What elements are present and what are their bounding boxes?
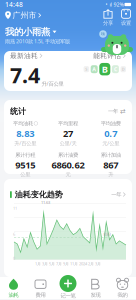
staticText: 设置 bbox=[121, 20, 131, 26]
staticText: 能耗评估 bbox=[93, 52, 121, 60]
staticText: • ıl 92% bbox=[105, 1, 123, 8]
staticText: 公里/天 bbox=[59, 140, 76, 147]
staticText: 我的 bbox=[117, 292, 127, 298]
staticText: 油耗变化趋势 bbox=[15, 190, 63, 199]
button[interactable]: 广州市 bbox=[5, 9, 41, 20]
button[interactable]: 分享 bbox=[103, 9, 113, 26]
staticText: 升 bbox=[108, 171, 113, 178]
button[interactable]: 我的 bbox=[109, 275, 136, 300]
button[interactable]: 一年 bbox=[111, 191, 126, 198]
staticText: 11 bbox=[13, 205, 17, 211]
staticText: 27 bbox=[63, 127, 73, 140]
button[interactable]: 记一笔 bbox=[59, 275, 76, 299]
staticText: A bbox=[92, 66, 96, 73]
staticText: 11.63 bbox=[41, 200, 50, 205]
button[interactable]: 我的小雨燕 bbox=[0, 26, 61, 38]
staticText: 分享 bbox=[103, 20, 113, 26]
staticText: 记一笔 bbox=[60, 292, 75, 299]
staticText: 1月 3月 5月 7月 9月 11月 2024 2月 3月 bbox=[35, 261, 101, 266]
staticText: 一年 bbox=[111, 191, 121, 198]
button[interactable]: 费用 bbox=[27, 275, 54, 300]
button[interactable]: 最新油耗 bbox=[10, 52, 43, 60]
staticText: 平均油费 bbox=[101, 120, 121, 127]
staticText: 8.83 bbox=[104, 231, 111, 237]
staticText: 0 bbox=[13, 255, 15, 261]
button[interactable]: 油耗 bbox=[0, 275, 27, 300]
staticText: 6860.62 bbox=[51, 159, 84, 171]
staticText: 雨燕 2010款 1.5L 手动冠军版 bbox=[5, 38, 70, 45]
staticText: 油耗 bbox=[8, 292, 18, 298]
button[interactable]: 能耗评估 bbox=[93, 52, 126, 60]
staticText: 元 bbox=[65, 171, 70, 178]
staticText: 9515 bbox=[15, 159, 35, 171]
staticText: 公里 bbox=[20, 171, 30, 178]
staticText: 7.4 bbox=[10, 61, 40, 89]
staticText: 平均里程 bbox=[58, 120, 78, 127]
staticText: B bbox=[102, 63, 108, 75]
staticText: 8.83 bbox=[16, 127, 34, 140]
staticText: 广州市 bbox=[13, 10, 37, 20]
staticText: 累计行程 bbox=[15, 152, 35, 158]
staticText: C bbox=[114, 66, 117, 73]
staticText: 统计 bbox=[10, 106, 26, 116]
staticText: 嗨 bbox=[101, 31, 105, 36]
staticText: 升/百公里 bbox=[41, 80, 63, 87]
staticText: 平均油耗 bbox=[13, 120, 33, 127]
staticText: 累计加油 bbox=[101, 152, 121, 158]
staticText: 元/公里 bbox=[102, 140, 119, 147]
button[interactable]: 发现 bbox=[82, 275, 109, 300]
staticText: 费用 bbox=[35, 292, 45, 298]
staticText: S bbox=[85, 66, 87, 72]
staticText: 我的小雨燕 bbox=[5, 26, 50, 38]
staticText: ⇄ bbox=[120, 107, 126, 115]
button[interactable]: 一年 bbox=[108, 107, 126, 115]
staticText: 升/百公里 bbox=[14, 140, 36, 147]
staticText: 867 bbox=[103, 159, 118, 171]
staticText: 最新油耗 bbox=[10, 52, 38, 60]
button[interactable]: 设置 bbox=[113, 9, 131, 26]
staticText: 累计油费 bbox=[58, 152, 78, 158]
staticText: 发现 bbox=[90, 292, 100, 298]
staticText: 6 bbox=[13, 231, 15, 237]
staticText: D bbox=[122, 66, 125, 72]
staticText: 0.7 bbox=[104, 127, 117, 140]
staticText: 一年 bbox=[108, 108, 118, 115]
staticText: 14:48 bbox=[5, 0, 23, 9]
